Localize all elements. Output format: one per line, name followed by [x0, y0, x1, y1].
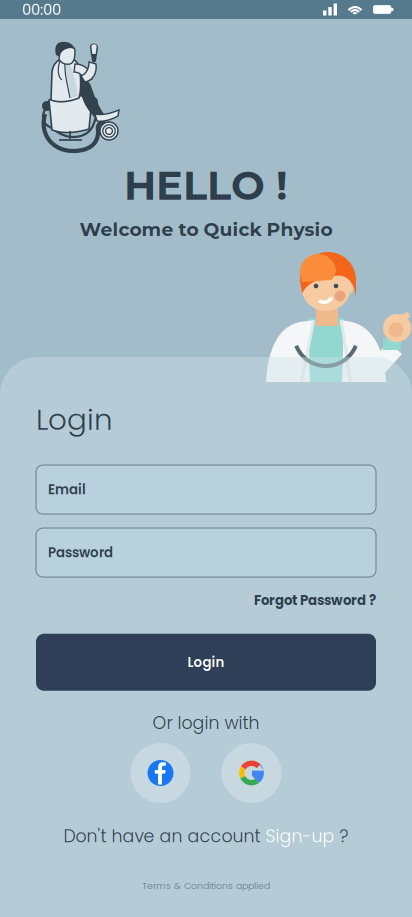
- button[interactable]: Email: [36, 465, 376, 514]
- button[interactable]: Forgot Password ?: [254, 591, 376, 610]
- staticText: Password: [48, 543, 113, 562]
- staticText: Login: [36, 399, 113, 440]
- staticText: Login: [187, 653, 224, 672]
- button[interactable]: Don't have an account: [36, 824, 376, 848]
- staticText: ?: [334, 824, 348, 848]
- staticText: Or login with: [152, 711, 259, 735]
- staticText: HELLO !: [124, 161, 288, 210]
- staticText: Email: [48, 480, 86, 499]
- staticText: Don't have an account: [63, 824, 265, 848]
- staticText: Forgot Password ?: [254, 591, 376, 610]
- button[interactable]: Login: [36, 634, 376, 691]
- button[interactable]: Sign in with Google: [221, 743, 281, 803]
- staticText: 00:00: [22, 0, 61, 20]
- staticText: Sign-up: [265, 824, 334, 848]
- staticText: Terms & Conditions applied: [142, 879, 270, 892]
- button[interactable]: Sign in with Facebook: [130, 743, 190, 803]
- button[interactable]: Password: [36, 528, 376, 577]
- staticText: Welcome to Quick Physio: [79, 218, 332, 241]
